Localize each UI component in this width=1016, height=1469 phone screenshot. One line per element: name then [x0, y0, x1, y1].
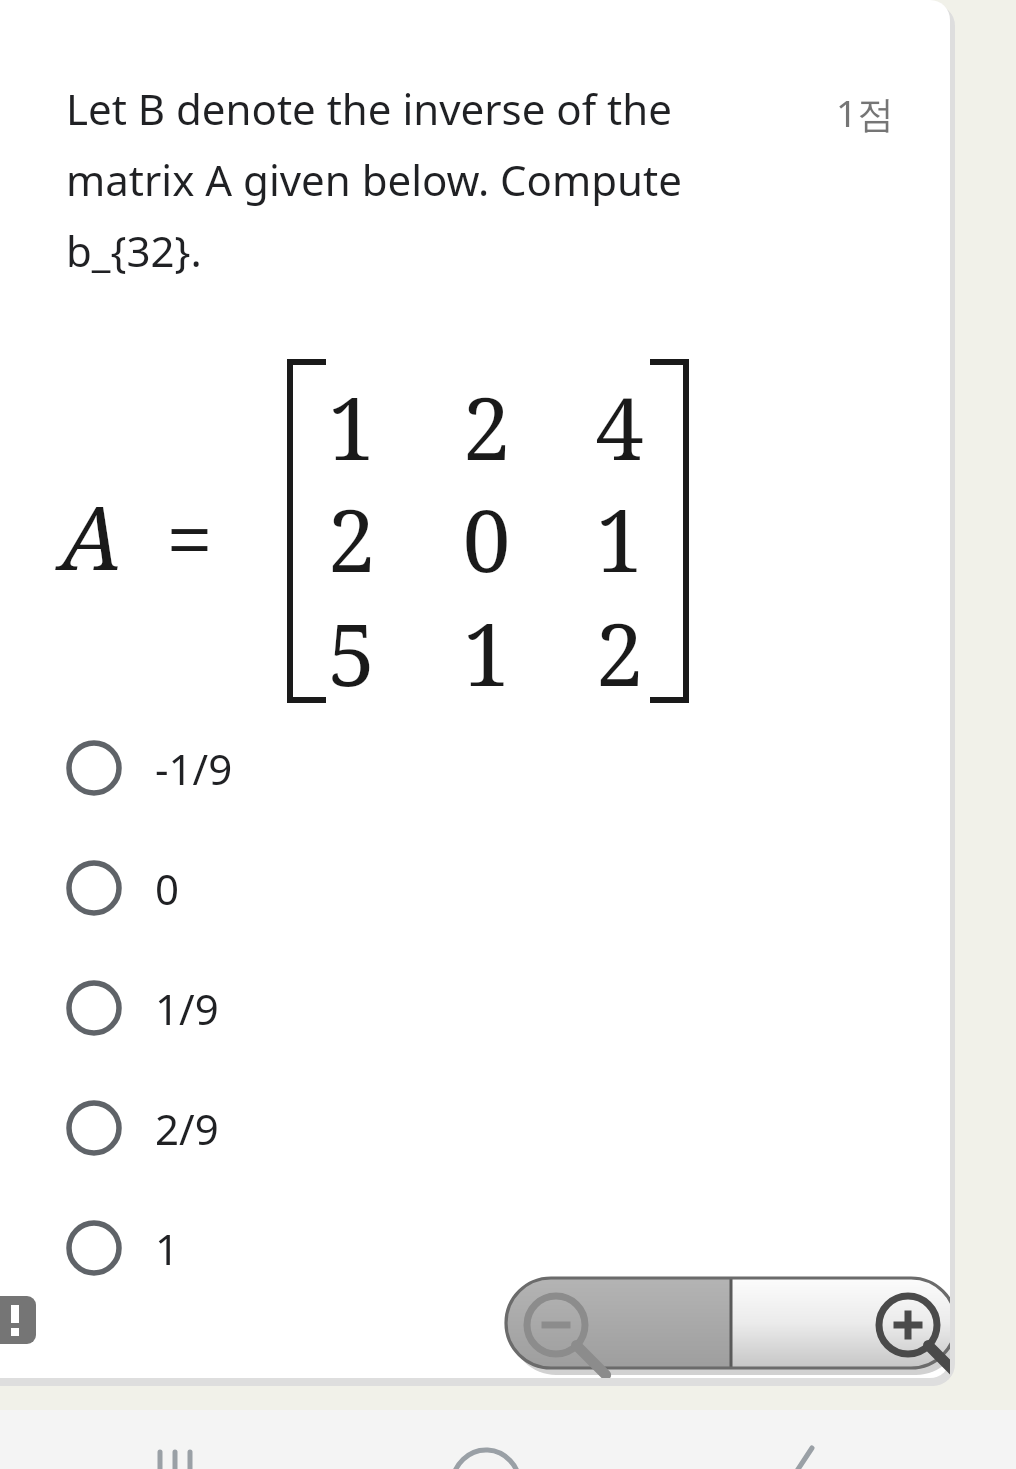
button[interactable]: -1/9: [40, 716, 930, 820]
button[interactable]: 0: [40, 836, 930, 940]
button[interactable]: Recents: [80, 1412, 270, 1469]
button[interactable]: Home: [391, 1412, 581, 1469]
button[interactable]: Back: [702, 1412, 892, 1469]
button[interactable]: 1: [40, 1196, 930, 1300]
button[interactable]: 1/9: [40, 956, 930, 1060]
button[interactable]: Zoom out: [506, 1278, 731, 1368]
button[interactable]: Notice: [0, 1296, 36, 1344]
button[interactable]: 2/9: [40, 1076, 930, 1180]
button[interactable]: Zoom in: [731, 1278, 956, 1368]
